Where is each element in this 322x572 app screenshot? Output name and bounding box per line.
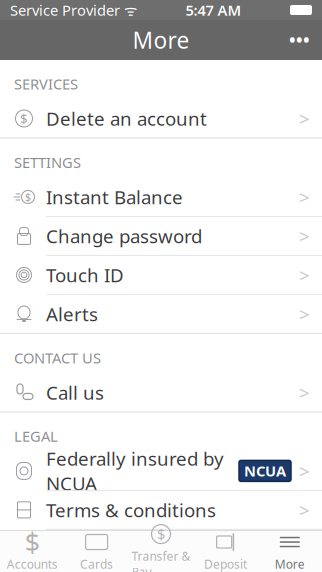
staticText: > bbox=[299, 380, 310, 405]
staticText: ᯤ bbox=[124, 0, 137, 20]
staticText: > bbox=[299, 302, 310, 326]
staticText: Transfer & Pay bbox=[131, 548, 190, 572]
staticText: Touch ID bbox=[46, 263, 124, 287]
staticText: ••• bbox=[289, 28, 310, 51]
button[interactable]: Call us bbox=[0, 373, 322, 411]
staticText: More bbox=[275, 556, 305, 572]
staticText: SETTINGS bbox=[14, 152, 81, 172]
staticText: > bbox=[299, 263, 310, 287]
staticText: Terms & conditions bbox=[46, 497, 216, 522]
button[interactable]: More bbox=[258, 531, 322, 572]
button[interactable]: Change password bbox=[0, 217, 322, 255]
staticText: Deposit bbox=[204, 556, 247, 572]
button[interactable]: $ bbox=[0, 99, 322, 137]
button[interactable]: Deposit bbox=[193, 531, 258, 572]
staticText: More bbox=[132, 25, 189, 55]
staticText: Cards bbox=[80, 556, 113, 572]
staticText: $ bbox=[20, 110, 28, 127]
staticText: Change password bbox=[46, 224, 202, 248]
staticText: Service Provider bbox=[10, 0, 120, 20]
button[interactable]: $ bbox=[0, 178, 322, 216]
staticText: $ bbox=[25, 190, 31, 204]
staticText: > bbox=[299, 185, 310, 209]
staticText: > bbox=[299, 106, 310, 131]
button[interactable]: Cards bbox=[64, 531, 129, 572]
staticText: Accounts bbox=[7, 556, 58, 572]
staticText: > bbox=[299, 497, 310, 522]
staticText: $ bbox=[157, 524, 165, 544]
staticText: Instant Balance bbox=[46, 185, 183, 209]
button[interactable]: Terms & conditions bbox=[0, 491, 322, 529]
button[interactable]: $ bbox=[129, 531, 193, 572]
staticText: SERVICES bbox=[14, 74, 78, 93]
staticText: Federally insured by NCUA bbox=[46, 446, 224, 496]
staticText: CONTACT US bbox=[14, 348, 101, 367]
staticText: > bbox=[299, 458, 310, 483]
button[interactable]: Touch ID bbox=[0, 256, 322, 294]
staticText: 5:47 AM bbox=[185, 0, 241, 20]
button[interactable]: $ bbox=[0, 531, 64, 572]
staticText: $ bbox=[25, 524, 40, 560]
button[interactable]: Federally insured by NCUA bbox=[0, 452, 322, 490]
staticText: > bbox=[299, 224, 310, 248]
button[interactable]: Alerts bbox=[0, 295, 322, 333]
button[interactable]: More options bbox=[277, 18, 322, 61]
staticText: Alerts bbox=[46, 302, 98, 326]
staticText: Call us bbox=[46, 380, 104, 405]
staticText: NCUA bbox=[244, 461, 286, 481]
staticText: LEGAL bbox=[14, 426, 58, 446]
staticText: Delete an account bbox=[46, 106, 207, 131]
